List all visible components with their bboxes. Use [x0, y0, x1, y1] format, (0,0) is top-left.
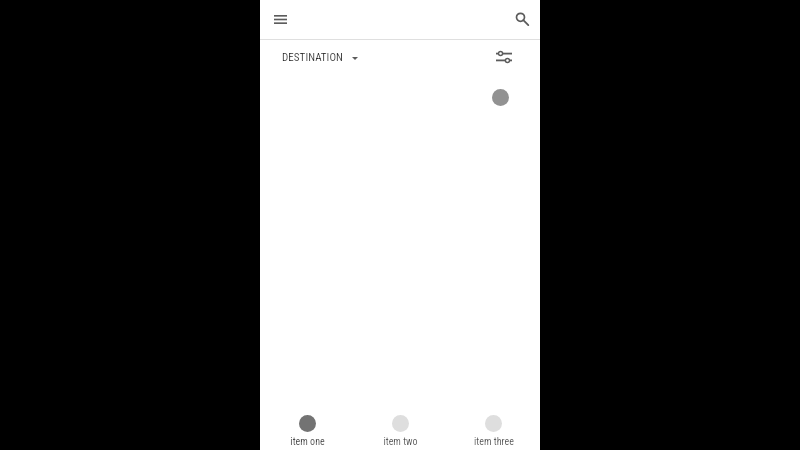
staticText: DESTINATION — [282, 51, 343, 64]
button[interactable]: item one — [260, 406, 354, 450]
button[interactable]: DESTINATION — [282, 51, 358, 64]
button[interactable]: Profile — [492, 89, 509, 106]
staticText: item one — [290, 436, 325, 448]
button[interactable]: item three — [447, 406, 540, 450]
button[interactable]: Search — [507, 0, 539, 39]
staticText: item two — [383, 436, 418, 448]
button[interactable]: Open navigation menu — [264, 0, 296, 39]
button[interactable]: Filter — [489, 42, 519, 72]
staticText: item three — [474, 436, 514, 448]
button[interactable]: item two — [354, 406, 447, 450]
